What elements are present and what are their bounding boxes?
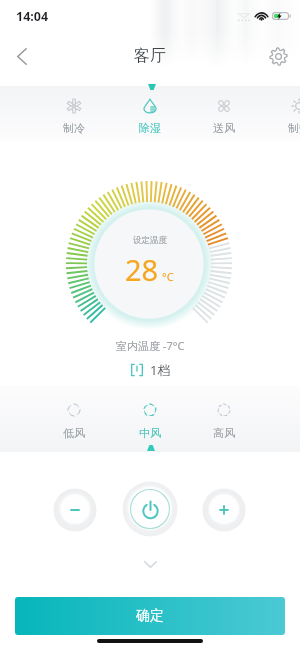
button[interactable]: Settings [256, 34, 300, 78]
button[interactable]: Back [0, 34, 44, 78]
button[interactable]: 制冷 [42, 86, 106, 140]
staticText: 1档 [150, 361, 171, 379]
button[interactable]: 高风 [192, 386, 256, 452]
staticText: °C [162, 269, 174, 284]
button[interactable]: Collapse [136, 552, 164, 576]
staticText: 28 [125, 250, 159, 289]
staticText: 制冷 [63, 121, 85, 135]
button[interactable]: 送风 [192, 86, 256, 140]
staticText: 确定 [136, 607, 164, 625]
staticText: 设定温度 [133, 235, 167, 246]
staticText: 低风 [63, 426, 85, 440]
button[interactable]: Decrease temperature [53, 488, 97, 532]
button[interactable]: 中风 [118, 386, 182, 452]
staticText: 高风 [213, 426, 235, 440]
staticText: 制热 [288, 121, 300, 135]
button[interactable]: 低风 [42, 386, 106, 452]
staticText: 除湿 [139, 121, 161, 135]
button[interactable]: 除湿 [118, 86, 182, 140]
button[interactable]: Power [122, 481, 178, 537]
button[interactable]: Increase temperature [202, 488, 246, 532]
staticText: 中风 [139, 426, 161, 440]
staticText: 送风 [213, 121, 235, 135]
staticText: 14:04 [16, 8, 49, 25]
button[interactable]: 确定 [15, 597, 285, 635]
staticText: 客厅 [134, 46, 166, 66]
button[interactable]: 制热 [267, 86, 300, 140]
button[interactable]: 1档 [130, 361, 171, 379]
staticText: 室内温度 -7°C [116, 338, 185, 353]
